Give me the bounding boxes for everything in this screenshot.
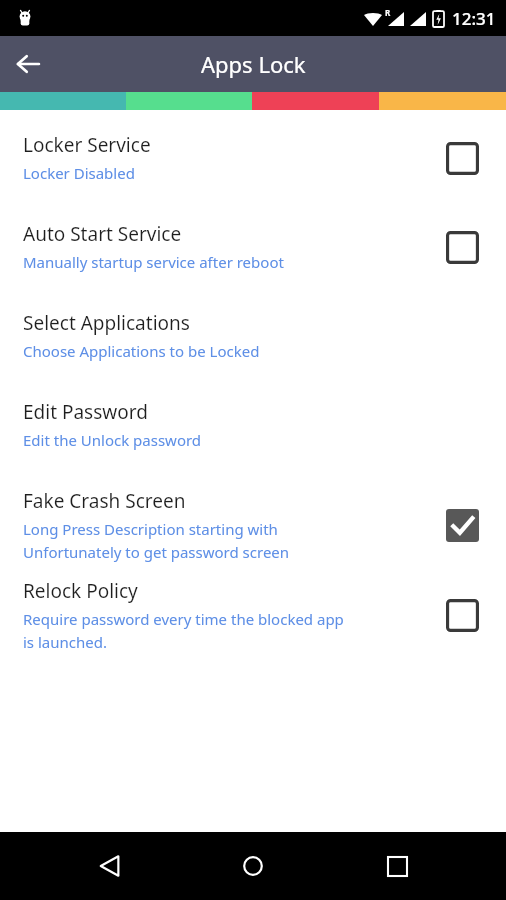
button[interactable]: Select Applications [0,310,506,361]
staticText: Edit the Unlock password [23,430,202,450]
staticText: 12:31 [452,7,496,30]
staticText: Choose Applications to be Locked [23,341,260,361]
button[interactable]: Recent apps [363,832,431,900]
staticText: Apps Lock [201,49,306,79]
staticText: Require password every time the blocked … [23,609,344,629]
staticText: is launched. [23,632,107,652]
staticText: Edit Password [23,399,148,425]
button[interactable]: Back [0,36,56,92]
staticText: Locker Disabled [23,163,135,183]
staticText: Auto Start Service [23,221,182,247]
button[interactable]: Home [219,832,287,900]
button[interactable]: Unchecked [446,231,479,264]
button[interactable]: Back [76,832,144,900]
button[interactable]: Fake Crash Screen [0,488,506,562]
staticText: R [385,7,391,18]
button[interactable]: Edit Password [0,399,506,450]
staticText: Select Applications [23,310,190,336]
button[interactable]: Checked [446,509,479,542]
button[interactable]: Auto Start Service [0,221,506,272]
button[interactable]: Unchecked [446,142,479,175]
button[interactable]: Locker Service [0,132,506,183]
staticText: Unfortunately to get password screen [23,542,290,562]
button[interactable]: Unchecked [446,599,479,632]
staticText: Fake Crash Screen [23,488,186,514]
staticText: Locker Service [23,132,151,158]
staticText: Manually startup service after reboot [23,252,284,272]
button[interactable]: Relock Policy [0,578,506,652]
staticText: Long Press Description starting with [23,519,278,539]
staticText: Relock Policy [23,578,138,604]
